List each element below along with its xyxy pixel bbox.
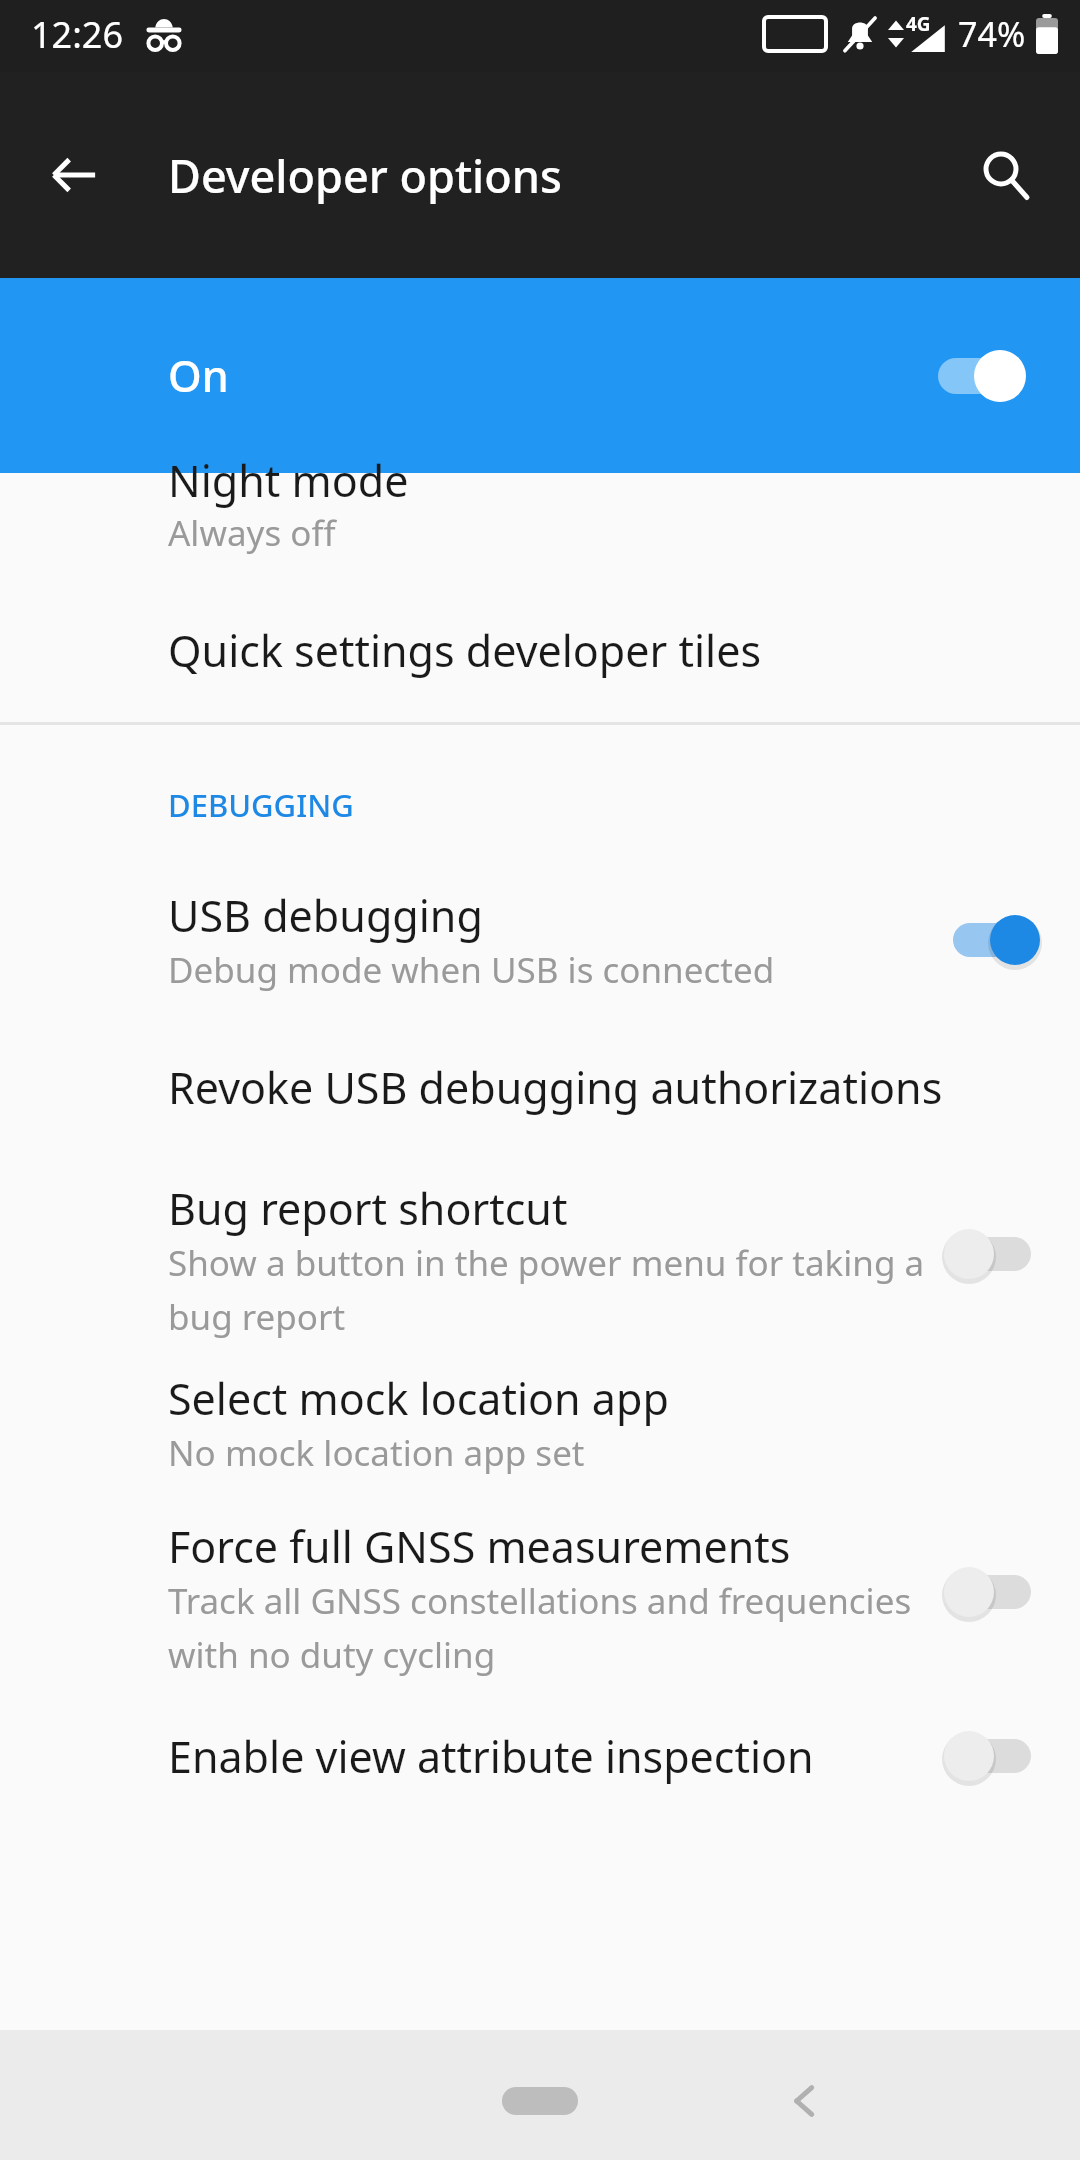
button[interactable]: Back (757, 2053, 853, 2149)
staticText: bug report (168, 1293, 346, 1341)
button[interactable]: Search (958, 127, 1054, 223)
staticText: Always off (168, 509, 336, 557)
button[interactable]: Force full GNSS measurements (0, 1498, 1080, 1686)
staticText: USB debugging (168, 886, 483, 945)
staticText: Quick settings developer tiles (168, 621, 762, 680)
button[interactable]: Toggle developer options (930, 336, 1040, 416)
button[interactable]: Toggle Force full GNSS measurements (930, 1547, 1050, 1637)
staticText: Night mode (168, 451, 409, 510)
staticText: Track all GNSS constellations and freque… (168, 1577, 912, 1625)
button[interactable]: Home (470, 2066, 610, 2136)
staticText: No mock location app set (168, 1429, 585, 1477)
staticText: On (168, 346, 229, 405)
staticText: 74% (958, 11, 1026, 57)
button[interactable]: Night mode (0, 473, 1080, 579)
button[interactable]: On (0, 278, 1080, 473)
button[interactable]: Bug report shortcut (0, 1160, 1080, 1348)
staticText: Force full GNSS measurements (168, 1517, 791, 1576)
staticText: Enable view attribute inspection (168, 1727, 814, 1786)
staticText: Revoke USB debugging authorizations (168, 1058, 943, 1117)
button[interactable]: Toggle USB debugging (930, 895, 1050, 985)
button[interactable]: Toggle Bug report shortcut (930, 1209, 1050, 1299)
button[interactable]: Quick settings developer tiles (0, 579, 1080, 722)
staticText: DEBUGGING (168, 784, 354, 826)
staticText: Show a button in the power menu for taki… (168, 1239, 925, 1287)
staticText: Developer options (168, 145, 562, 206)
staticText: Bug report shortcut (168, 1179, 568, 1238)
button[interactable]: Revoke USB debugging authorizations (0, 1015, 1080, 1160)
button[interactable]: Select mock location app (0, 1348, 1080, 1498)
button[interactable]: Enable view attribute inspection (0, 1686, 1080, 1826)
staticText: with no duty cycling (168, 1631, 496, 1679)
staticText: 12:26 (31, 10, 124, 59)
button[interactable]: USB debugging (0, 865, 1080, 1015)
staticText: 4G (906, 11, 931, 37)
button[interactable]: Back (26, 127, 122, 223)
button[interactable]: Toggle Enable view attribute inspection (930, 1711, 1050, 1801)
staticText: Select mock location app (168, 1369, 669, 1428)
staticText: Debug mode when USB is connected (168, 946, 775, 994)
